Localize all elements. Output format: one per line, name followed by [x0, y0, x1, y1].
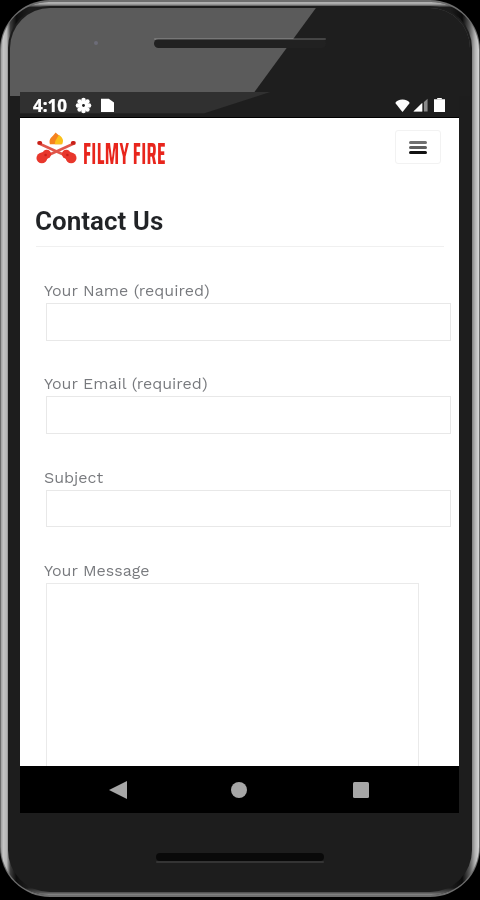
staticText: FILMY FIRE — [83, 130, 166, 177]
staticText: Contact Us — [35, 206, 164, 236]
button[interactable]: Your Message input — [46, 583, 419, 773]
button[interactable]: Open navigation menu — [395, 130, 441, 164]
button[interactable]: Home — [201, 766, 277, 813]
button[interactable]: Text input — [46, 303, 451, 341]
button[interactable]: Back — [80, 766, 156, 813]
button[interactable]: Text input — [46, 396, 451, 434]
staticText: Your Message — [44, 561, 150, 580]
button[interactable]: Text input — [46, 490, 451, 527]
staticText: Your Name (required) — [44, 281, 210, 300]
staticText: Your Email (required) — [44, 374, 208, 393]
staticText: 4:10 — [33, 94, 67, 117]
button[interactable]: Recent apps — [323, 766, 399, 813]
staticText: Subject — [44, 468, 104, 487]
